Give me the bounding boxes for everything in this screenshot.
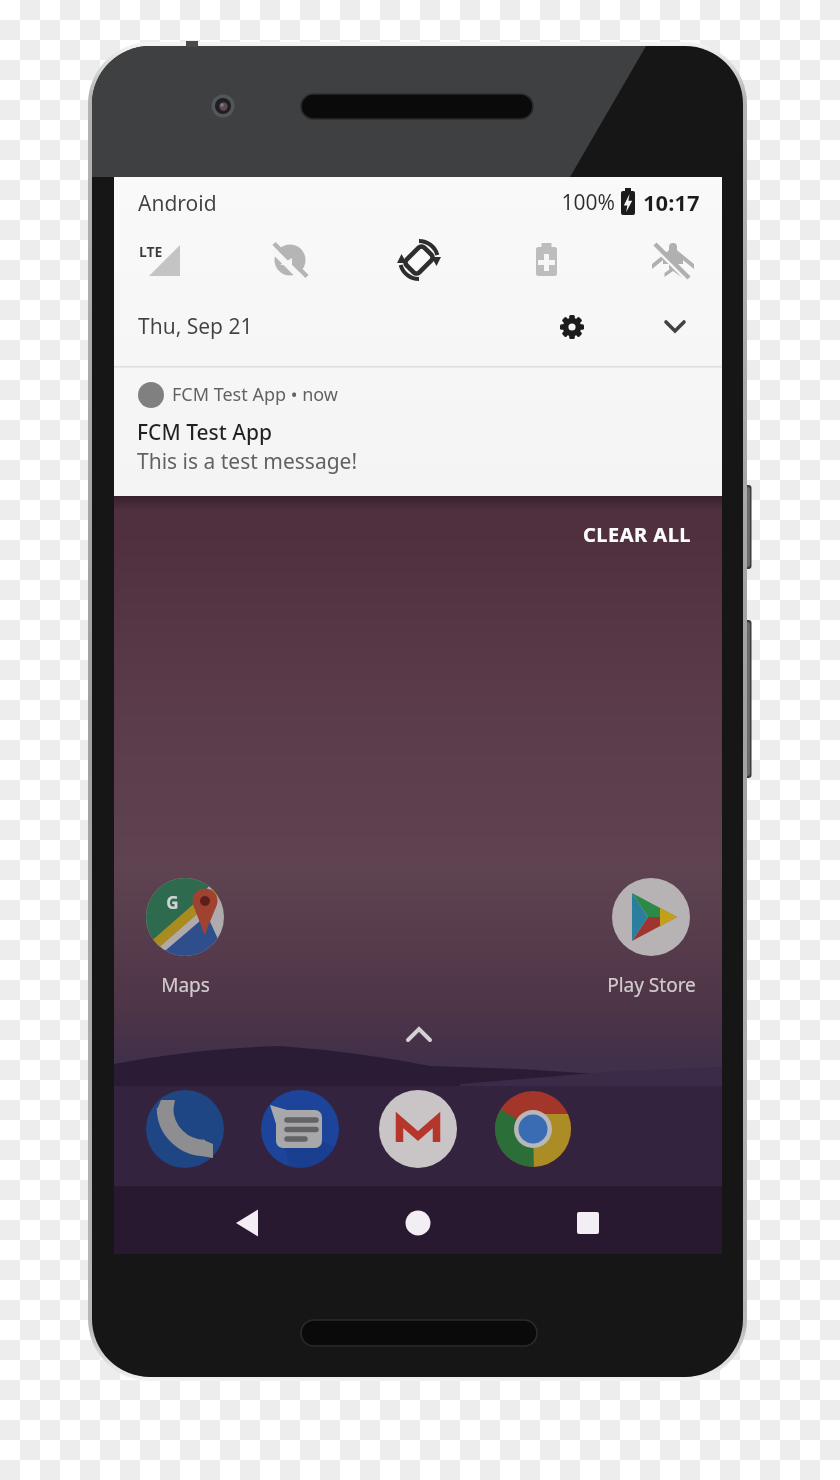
staticText: CLEAR ALL: [582, 521, 691, 548]
button[interactable]: [387, 1192, 449, 1254]
staticText: Maps: [161, 972, 210, 998]
button[interactable]: [146, 1090, 224, 1168]
button[interactable]: [379, 1090, 457, 1168]
button[interactable]: [655, 307, 695, 347]
button[interactable]: [261, 1090, 339, 1168]
button[interactable]: [125, 235, 215, 290]
button[interactable]: [255, 235, 325, 290]
staticText: Android: [138, 189, 217, 218]
button[interactable]: [146, 878, 224, 998]
button[interactable]: [575, 515, 700, 557]
button[interactable]: [612, 878, 690, 998]
staticText: FCM Test App: [137, 418, 273, 447]
button[interactable]: [515, 235, 585, 290]
staticText: Thu, Sep 21: [138, 312, 253, 341]
button[interactable]: [552, 307, 592, 347]
staticText: FCM Test App • now: [172, 382, 338, 407]
button[interactable]: [557, 1192, 619, 1254]
staticText: 100%: [561, 188, 615, 217]
staticText: G: [166, 891, 179, 914]
staticText: This is a test message!: [137, 447, 358, 476]
button[interactable]: [385, 235, 455, 290]
staticText: LTE: [139, 242, 163, 261]
button[interactable]: [216, 1192, 278, 1254]
button[interactable]: [114, 370, 722, 490]
staticText: 10:17: [643, 187, 700, 217]
button[interactable]: [640, 235, 710, 290]
staticText: Play Store: [607, 972, 696, 998]
button[interactable]: [494, 1090, 572, 1168]
